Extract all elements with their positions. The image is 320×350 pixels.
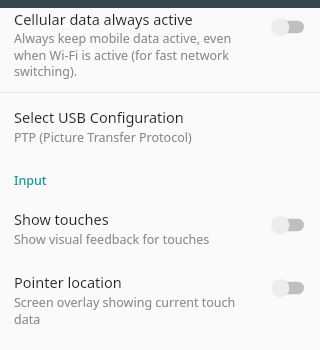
staticText: Screen overlay showing current touch dat…	[14, 294, 258, 327]
staticText: Show touches	[14, 209, 109, 229]
staticText: Select USB Configuration	[14, 107, 184, 127]
button[interactable]: Show touches	[266, 211, 308, 239]
button[interactable]: Select USB Configuration	[0, 93, 320, 160]
staticText: Always keep mobile data active, even whe…	[14, 30, 258, 79]
button[interactable]: Cellular data always active	[266, 13, 308, 41]
staticText: Input	[14, 172, 47, 189]
button[interactable]: Show touches	[0, 195, 320, 262]
button[interactable]: Cellular data always active	[0, 8, 320, 89]
staticText: PTP (Picture Transfer Protocol)	[14, 129, 192, 146]
staticText: Cellular data always active	[14, 9, 193, 29]
button[interactable]: Pointer location	[266, 274, 308, 302]
staticText: Show visual feedback for touches	[14, 231, 210, 248]
button[interactable]: Pointer location	[0, 262, 320, 341]
staticText: Pointer location	[14, 272, 122, 292]
